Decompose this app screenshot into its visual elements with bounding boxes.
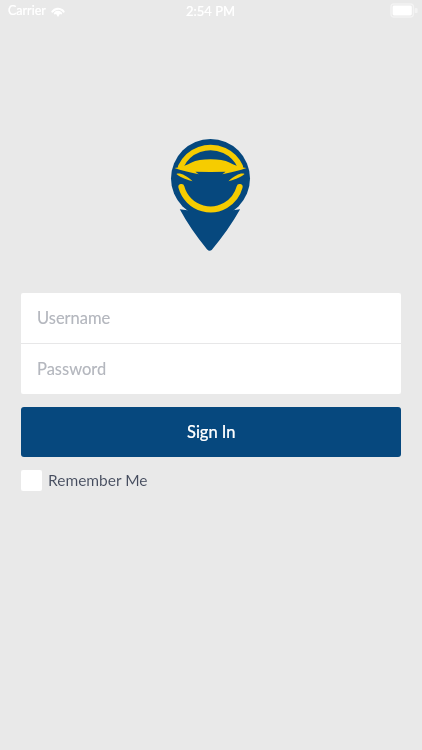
button[interactable]: Password bbox=[21, 344, 401, 394]
button[interactable]: Sign In bbox=[21, 407, 401, 457]
staticText: 2:54 PM bbox=[186, 3, 236, 19]
staticText: Sign In bbox=[187, 422, 236, 442]
button[interactable]: Username bbox=[21, 293, 401, 343]
button[interactable]: Remember Me bbox=[21, 468, 148, 492]
staticText: Username bbox=[37, 308, 111, 328]
staticText: Carrier bbox=[8, 3, 46, 18]
staticText: Password bbox=[37, 359, 107, 379]
staticText: Remember Me bbox=[48, 471, 148, 490]
